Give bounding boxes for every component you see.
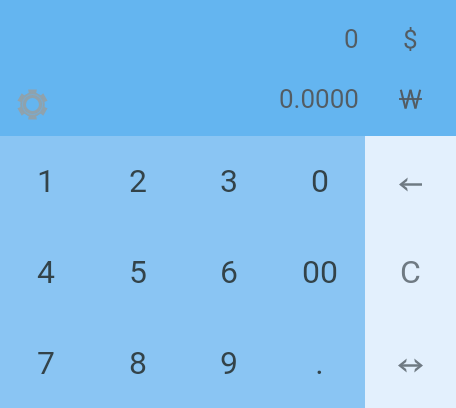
button[interactable]: 00 — [274, 226, 365, 317]
staticText: . — [315, 344, 324, 382]
staticText: 7 — [37, 344, 55, 382]
button[interactable]: 9 — [183, 317, 274, 408]
staticText: $ — [403, 24, 418, 54]
button[interactable]: 5 — [92, 226, 183, 317]
staticText: 0.0000 — [279, 84, 359, 114]
staticText: 1 — [37, 162, 55, 200]
staticText: 2 — [129, 162, 147, 200]
staticText: 0 — [344, 24, 359, 54]
staticText: 9 — [220, 344, 238, 382]
button[interactable]: C — [365, 226, 456, 317]
button[interactable]: 0 — [274, 136, 365, 226]
staticText: 8 — [129, 344, 147, 382]
button[interactable]: 3 — [183, 136, 274, 226]
button[interactable]: 4 — [0, 226, 92, 317]
button[interactable]: 6 — [183, 226, 274, 317]
staticText: C — [400, 253, 421, 291]
button[interactable]: 8 — [92, 317, 183, 408]
staticText: 0 — [311, 162, 329, 200]
button[interactable]: Swap currencies — [365, 317, 456, 408]
button[interactable]: 1 — [0, 136, 92, 226]
staticText: 6 — [220, 253, 238, 291]
button[interactable]: . — [274, 317, 365, 408]
button[interactable]: Settings — [11, 83, 53, 125]
staticText: 4 — [37, 253, 55, 291]
staticText: 5 — [129, 253, 147, 291]
button[interactable]: 7 — [0, 317, 92, 408]
button[interactable]: Backspace — [365, 136, 456, 226]
button[interactable]: 2 — [92, 136, 183, 226]
staticText: 3 — [220, 162, 238, 200]
staticText: 00 — [302, 253, 338, 291]
